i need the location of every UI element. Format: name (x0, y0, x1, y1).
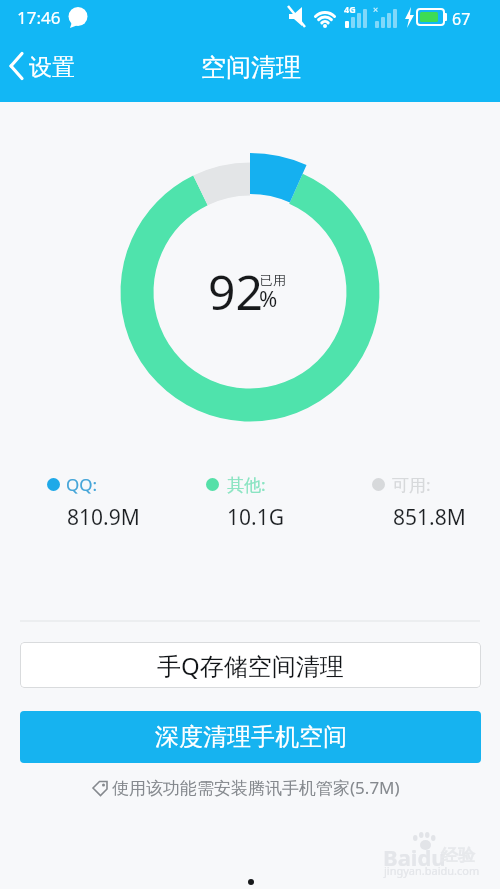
staticText: Baidu (383, 842, 446, 872)
staticText: 10.1G (227, 503, 284, 532)
button[interactable]: 深度清理手机空间 (20, 711, 481, 763)
staticText: 810.9M (67, 503, 140, 532)
staticText: 设置 (29, 53, 75, 82)
staticText: 67 (452, 8, 471, 30)
staticText: QQ: (66, 473, 98, 496)
staticText: 深度清理手机空间 (155, 722, 347, 752)
staticText: 其他: (227, 473, 266, 496)
staticText: 851.8M (393, 503, 466, 532)
button[interactable]: 设置 (4, 46, 74, 88)
staticText: 可用: (392, 473, 431, 496)
staticText: jingyan.baidu.com (384, 863, 480, 878)
staticText: 4G (344, 3, 356, 15)
staticText: 经验 (441, 845, 475, 866)
button[interactable]: 手Q存储空间清理 (20, 642, 481, 688)
staticText: 已用 (260, 272, 286, 288)
staticText: % (259, 283, 278, 313)
staticText: 空间清理 (201, 52, 301, 83)
staticText: 17:46 (17, 6, 61, 29)
staticText: 使用该功能需安装腾讯手机管家(5.7M) (112, 776, 400, 799)
staticText: 手Q存储空间清理 (157, 649, 344, 682)
staticText: × (373, 3, 379, 15)
staticText: 92 (208, 259, 263, 324)
